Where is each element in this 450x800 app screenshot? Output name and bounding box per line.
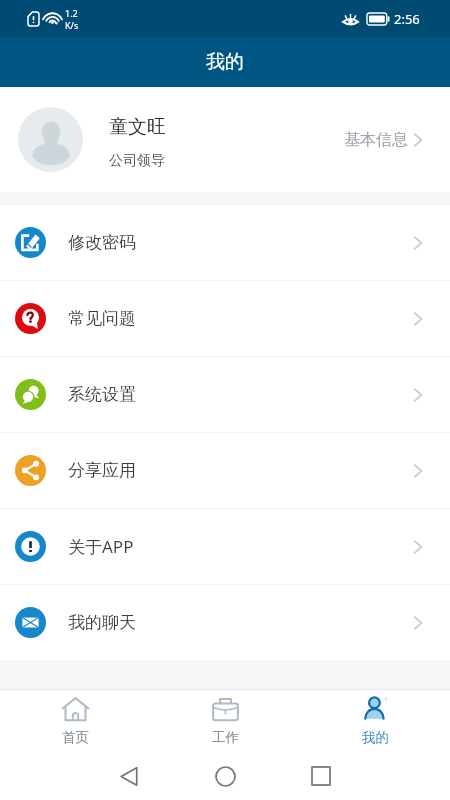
button[interactable]: 分享应用 bbox=[0, 433, 450, 508]
staticText: K/s bbox=[65, 19, 79, 31]
button[interactable]: 我的 bbox=[300, 690, 450, 752]
button[interactable]: 童文旺 bbox=[0, 87, 450, 192]
staticText: 分享应用 bbox=[68, 460, 136, 481]
button[interactable]: Recents bbox=[292, 752, 350, 800]
staticText: 2:56 bbox=[394, 10, 420, 28]
staticText: 首页 bbox=[62, 729, 89, 746]
staticText: 修改密码 bbox=[68, 232, 136, 253]
button[interactable]: 关于APP bbox=[0, 509, 450, 584]
staticText: 基本信息 bbox=[344, 130, 408, 150]
staticText: 系统设置 bbox=[68, 384, 136, 405]
button[interactable]: 首页 bbox=[0, 690, 150, 752]
staticText: 童文旺 bbox=[109, 115, 166, 139]
button[interactable]: 常见问题 bbox=[0, 281, 450, 356]
staticText: 常见问题 bbox=[68, 308, 136, 329]
staticText: 工作 bbox=[212, 729, 239, 746]
button[interactable]: 工作 bbox=[150, 690, 300, 752]
button[interactable]: Home bbox=[196, 752, 254, 800]
button[interactable]: Back bbox=[100, 752, 158, 800]
button[interactable]: 系统设置 bbox=[0, 357, 450, 432]
staticText: 1.2 bbox=[65, 7, 78, 19]
staticText: 关于APP bbox=[68, 535, 134, 558]
staticText: 公司领导 bbox=[109, 152, 165, 170]
staticText: 我的聊天 bbox=[68, 612, 136, 633]
staticText: 我的 bbox=[362, 729, 389, 746]
button[interactable]: 我的聊天 bbox=[0, 585, 450, 660]
staticText: 我的 bbox=[206, 50, 244, 74]
button[interactable]: 修改密码 bbox=[0, 205, 450, 280]
